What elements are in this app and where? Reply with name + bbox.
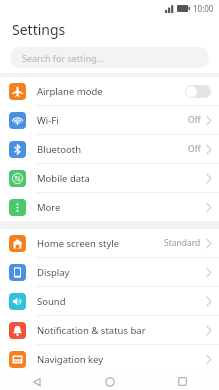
staticText: Sound — [37, 295, 66, 308]
staticText: Standard — [164, 237, 201, 249]
button[interactable]: Notification & status bar — [0, 316, 219, 345]
button[interactable]: Display — [0, 258, 219, 287]
staticText: Settings — [12, 20, 66, 39]
button[interactable]: Mobile data — [0, 164, 219, 193]
staticText: Home screen style — [37, 237, 120, 250]
staticText: Bluetooth — [37, 143, 82, 156]
button[interactable]: Airplane mode — [0, 77, 219, 106]
staticText: Notification & status bar — [37, 324, 146, 337]
button[interactable]: More — [0, 193, 219, 221]
button[interactable]: Wi-Fi — [0, 106, 219, 135]
button[interactable]: Sound — [0, 287, 219, 316]
staticText: Off — [188, 143, 201, 155]
staticText: Airplane mode — [37, 85, 103, 98]
staticText: Wi-Fi — [37, 114, 59, 127]
staticText: Off — [188, 114, 201, 126]
button[interactable]: Navigation key — [0, 345, 219, 373]
staticText: Navigation key — [37, 353, 104, 366]
button[interactable]: Home — [73, 373, 146, 390]
staticText: 10:00 — [193, 3, 214, 14]
button[interactable]: Search for setting... — [10, 47, 209, 68]
button[interactable]: Bluetooth — [0, 135, 219, 164]
button[interactable]: Home screen style — [0, 229, 219, 258]
staticText: Display — [37, 266, 70, 279]
other: Airplane mode toggle — [185, 85, 211, 98]
staticText: Mobile data — [37, 172, 90, 185]
staticText: Search for setting... — [22, 52, 104, 64]
button[interactable]: Back — [0, 373, 73, 390]
button[interactable]: Recents — [146, 373, 219, 390]
staticText: More — [37, 201, 61, 214]
